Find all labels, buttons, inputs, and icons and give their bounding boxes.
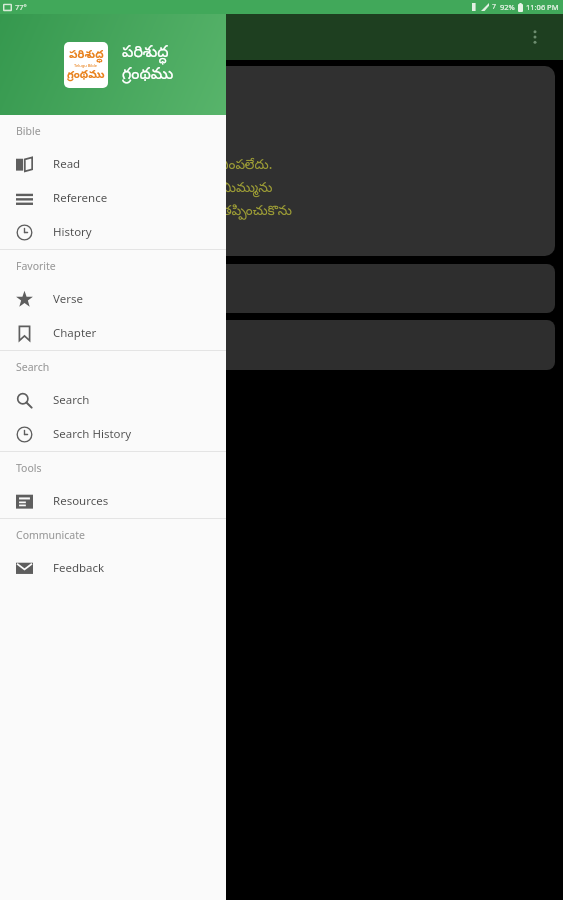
staticText: 92% [500, 2, 515, 12]
staticText: పరిశుద్ధ [122, 43, 169, 65]
staticText: గ్రంథము అధ్యాయము [5, 326, 105, 345]
staticText: August 3, 2017 [17, 105, 103, 123]
staticText: Favorite [16, 259, 56, 273]
staticText: Search [53, 392, 90, 408]
button[interactable]: Search History [0, 417, 226, 451]
button[interactable]: Feedback [0, 551, 226, 585]
staticText: లుగు శోధనతప్ప మరి ఏదియు మీకు సంభవింపలేదు… [5, 155, 273, 176]
staticText: 11.03.38 PM CDT [13, 125, 111, 143]
staticText: Welcome [29, 80, 95, 100]
staticText: Search [16, 360, 50, 374]
staticText: గ్రంథము [67, 68, 105, 83]
button[interactable]: Read [0, 147, 226, 181]
staticText: Communicate [16, 528, 85, 542]
button[interactable]: ISAIAH 50 [5, 264, 555, 313]
staticText: Feedback [53, 560, 105, 576]
button[interactable]: Reference [0, 181, 226, 215]
staticText: Telugu Bible [74, 63, 98, 68]
staticText: Bible [16, 124, 41, 138]
button[interactable]: Welcome [5, 66, 555, 256]
staticText: BOOK CHAPTER [5, 346, 104, 365]
staticText: 7 [492, 2, 497, 12]
staticText: Resources [53, 493, 109, 509]
staticText: సహింపగలుగుటకు ఆయన శోధనతో కూడ తప్పించుకొన… [5, 201, 292, 222]
button[interactable]: Resources [0, 484, 226, 518]
staticText: 11:06 PM [526, 2, 559, 12]
staticText: Chapter [53, 325, 97, 341]
staticText: Read [53, 156, 81, 172]
button[interactable]: History [0, 215, 226, 249]
staticText: సహింప గలిగినంతకంటె ఎక్కువగా ఆయన మిమ్మును [5, 178, 273, 199]
button[interactable]: Verse [0, 282, 226, 316]
button[interactable]: గ్రంథము అధ్యాయము [5, 320, 555, 370]
button[interactable]: Search [0, 383, 226, 417]
button[interactable]: Chapter [0, 316, 226, 350]
staticText: యెషయా 50 [27, 288, 95, 309]
staticText: Tools [16, 461, 42, 475]
staticText: పరిశుద్ధ [69, 48, 104, 63]
staticText: గ్రంథము [122, 65, 174, 87]
staticText: 77° [15, 2, 27, 12]
staticText: Verse [53, 291, 83, 307]
staticText: Search History [53, 426, 132, 442]
button[interactable]: More options [517, 19, 553, 55]
staticText: ISAIAH 50 [27, 268, 90, 286]
staticText: మార్గమును కలుగ జేయును. [5, 224, 150, 245]
staticText: History [53, 224, 92, 240]
staticText: Reference [53, 190, 108, 206]
